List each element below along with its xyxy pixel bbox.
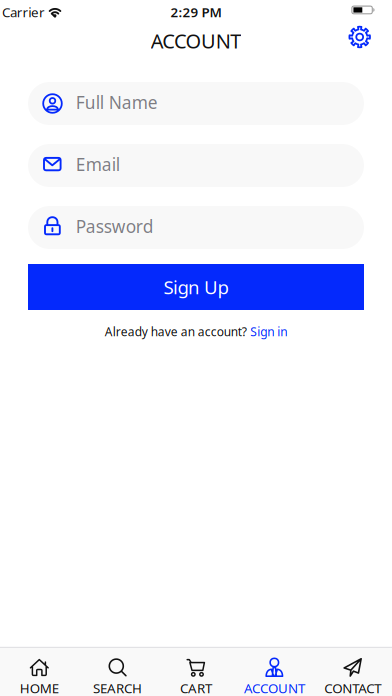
staticText: ACCOUNT: [244, 679, 305, 696]
button[interactable]: HOME: [0, 648, 78, 696]
button[interactable]: Sign in: [250, 323, 287, 339]
staticText: Email: [76, 153, 120, 176]
button[interactable]: SEARCH: [78, 648, 157, 696]
staticText: Sign Up: [163, 275, 228, 299]
staticText: SEARCH: [93, 679, 142, 696]
staticText: 2:29 PM: [170, 3, 221, 21]
staticText: Already have an account?: [105, 323, 247, 339]
button[interactable]: ACCOUNT: [235, 648, 314, 696]
staticText: CONTACT: [324, 679, 381, 696]
staticText: HOME: [20, 679, 59, 696]
button[interactable]: Settings: [349, 26, 371, 48]
button[interactable]: Password: [28, 206, 364, 249]
button[interactable]: CONTACT: [314, 648, 392, 696]
button[interactable]: Email: [28, 144, 364, 187]
button[interactable]: Sign Up: [28, 264, 364, 310]
button[interactable]: Full Name: [28, 82, 364, 125]
staticText: Full Name: [76, 91, 158, 114]
staticText: ACCOUNT: [151, 27, 241, 54]
staticText: Password: [76, 215, 154, 238]
staticText: Carrier: [2, 3, 45, 21]
button[interactable]: CART: [157, 648, 235, 696]
staticText: CART: [180, 679, 212, 696]
staticText: Sign in: [250, 323, 287, 339]
